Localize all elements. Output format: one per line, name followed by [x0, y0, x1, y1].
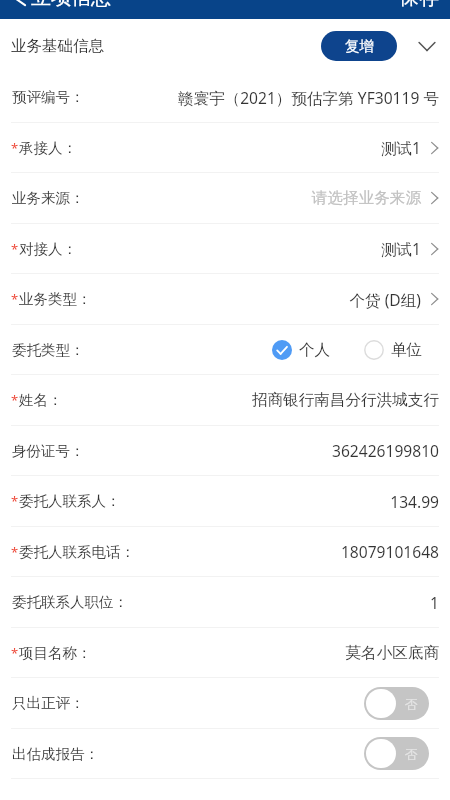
staticText: * — [11, 290, 19, 308]
button[interactable]: * — [0, 527, 450, 577]
staticText: 身份证号： — [12, 442, 85, 460]
staticText: 请选择业务来源 — [311, 188, 421, 208]
button[interactable]: 委托联系人职位： — [0, 577, 450, 628]
staticText: 134.99 — [390, 491, 439, 512]
staticText: 只出正评： — [12, 694, 85, 712]
button[interactable]: * — [0, 628, 450, 678]
staticText: 招商银行南昌分行洪城支行 — [251, 390, 439, 410]
staticText: 测试1 — [380, 238, 421, 259]
button[interactable]: 业务来源： — [0, 173, 450, 224]
staticText: 个人 — [299, 340, 331, 360]
button[interactable]: 出估成报告： — [0, 729, 450, 779]
staticText: * — [11, 391, 19, 409]
button[interactable]: 保存 — [399, 0, 439, 10]
staticText: 测试1 — [380, 137, 421, 158]
staticText: 委托人联系人： — [19, 492, 121, 510]
staticText: 保存 — [399, 0, 439, 10]
staticText: 对接人： — [19, 240, 77, 258]
staticText: 否 — [405, 696, 418, 712]
staticText: 立项信息 — [31, 0, 111, 10]
button[interactable]: Back — [13, 0, 111, 10]
staticText: 莫名小区底商 — [345, 643, 439, 663]
staticText: * — [11, 139, 19, 157]
staticText: 业务类型： — [19, 290, 92, 308]
staticText: * — [11, 240, 19, 258]
staticText: 委托联系人职位： — [12, 593, 128, 611]
button[interactable]: 只出正评： — [0, 678, 450, 729]
button[interactable]: Collapse — [415, 34, 439, 58]
staticText: 委托类型： — [12, 341, 85, 359]
staticText: * — [11, 492, 19, 510]
staticText: 单位 — [391, 340, 423, 360]
button[interactable]: 个人 — [272, 340, 331, 360]
button[interactable]: * — [0, 274, 450, 325]
button[interactable]: * — [0, 375, 450, 426]
staticText: 预评编号： — [12, 88, 85, 106]
button[interactable]: 委托类型： — [0, 325, 450, 375]
button[interactable]: 单位 — [364, 340, 423, 360]
staticText: 1 — [430, 592, 439, 613]
button[interactable]: * — [0, 123, 450, 173]
staticText: 项目名称： — [19, 644, 92, 662]
button[interactable]: Toggle off — [364, 687, 429, 720]
staticText: 业务来源： — [12, 189, 85, 207]
staticText: 承接人： — [19, 139, 77, 157]
staticText: 赣寰宇（2021）预估字第 YF30119 号 — [177, 87, 439, 108]
button[interactable]: 身份证号： — [0, 426, 450, 476]
button[interactable]: 复增 — [321, 31, 397, 61]
staticText: 委托人联系电话： — [19, 543, 135, 561]
staticText: 18079101648 — [340, 541, 439, 562]
button[interactable]: 预评编号： — [0, 72, 450, 123]
staticText: 复增 — [345, 37, 374, 55]
staticText: * — [11, 644, 19, 662]
staticText: 个贷 (D组) — [349, 289, 421, 310]
staticText: * — [11, 543, 19, 561]
staticText: 姓名： — [19, 391, 63, 409]
staticText: 出估成报告： — [12, 745, 99, 763]
staticText: 362426199810 — [331, 440, 439, 461]
staticText: 否 — [405, 746, 418, 762]
staticText: 业务基础信息 — [11, 36, 104, 56]
button[interactable]: * — [0, 476, 450, 527]
button[interactable]: Toggle off — [364, 737, 429, 770]
button[interactable]: * — [0, 224, 450, 274]
